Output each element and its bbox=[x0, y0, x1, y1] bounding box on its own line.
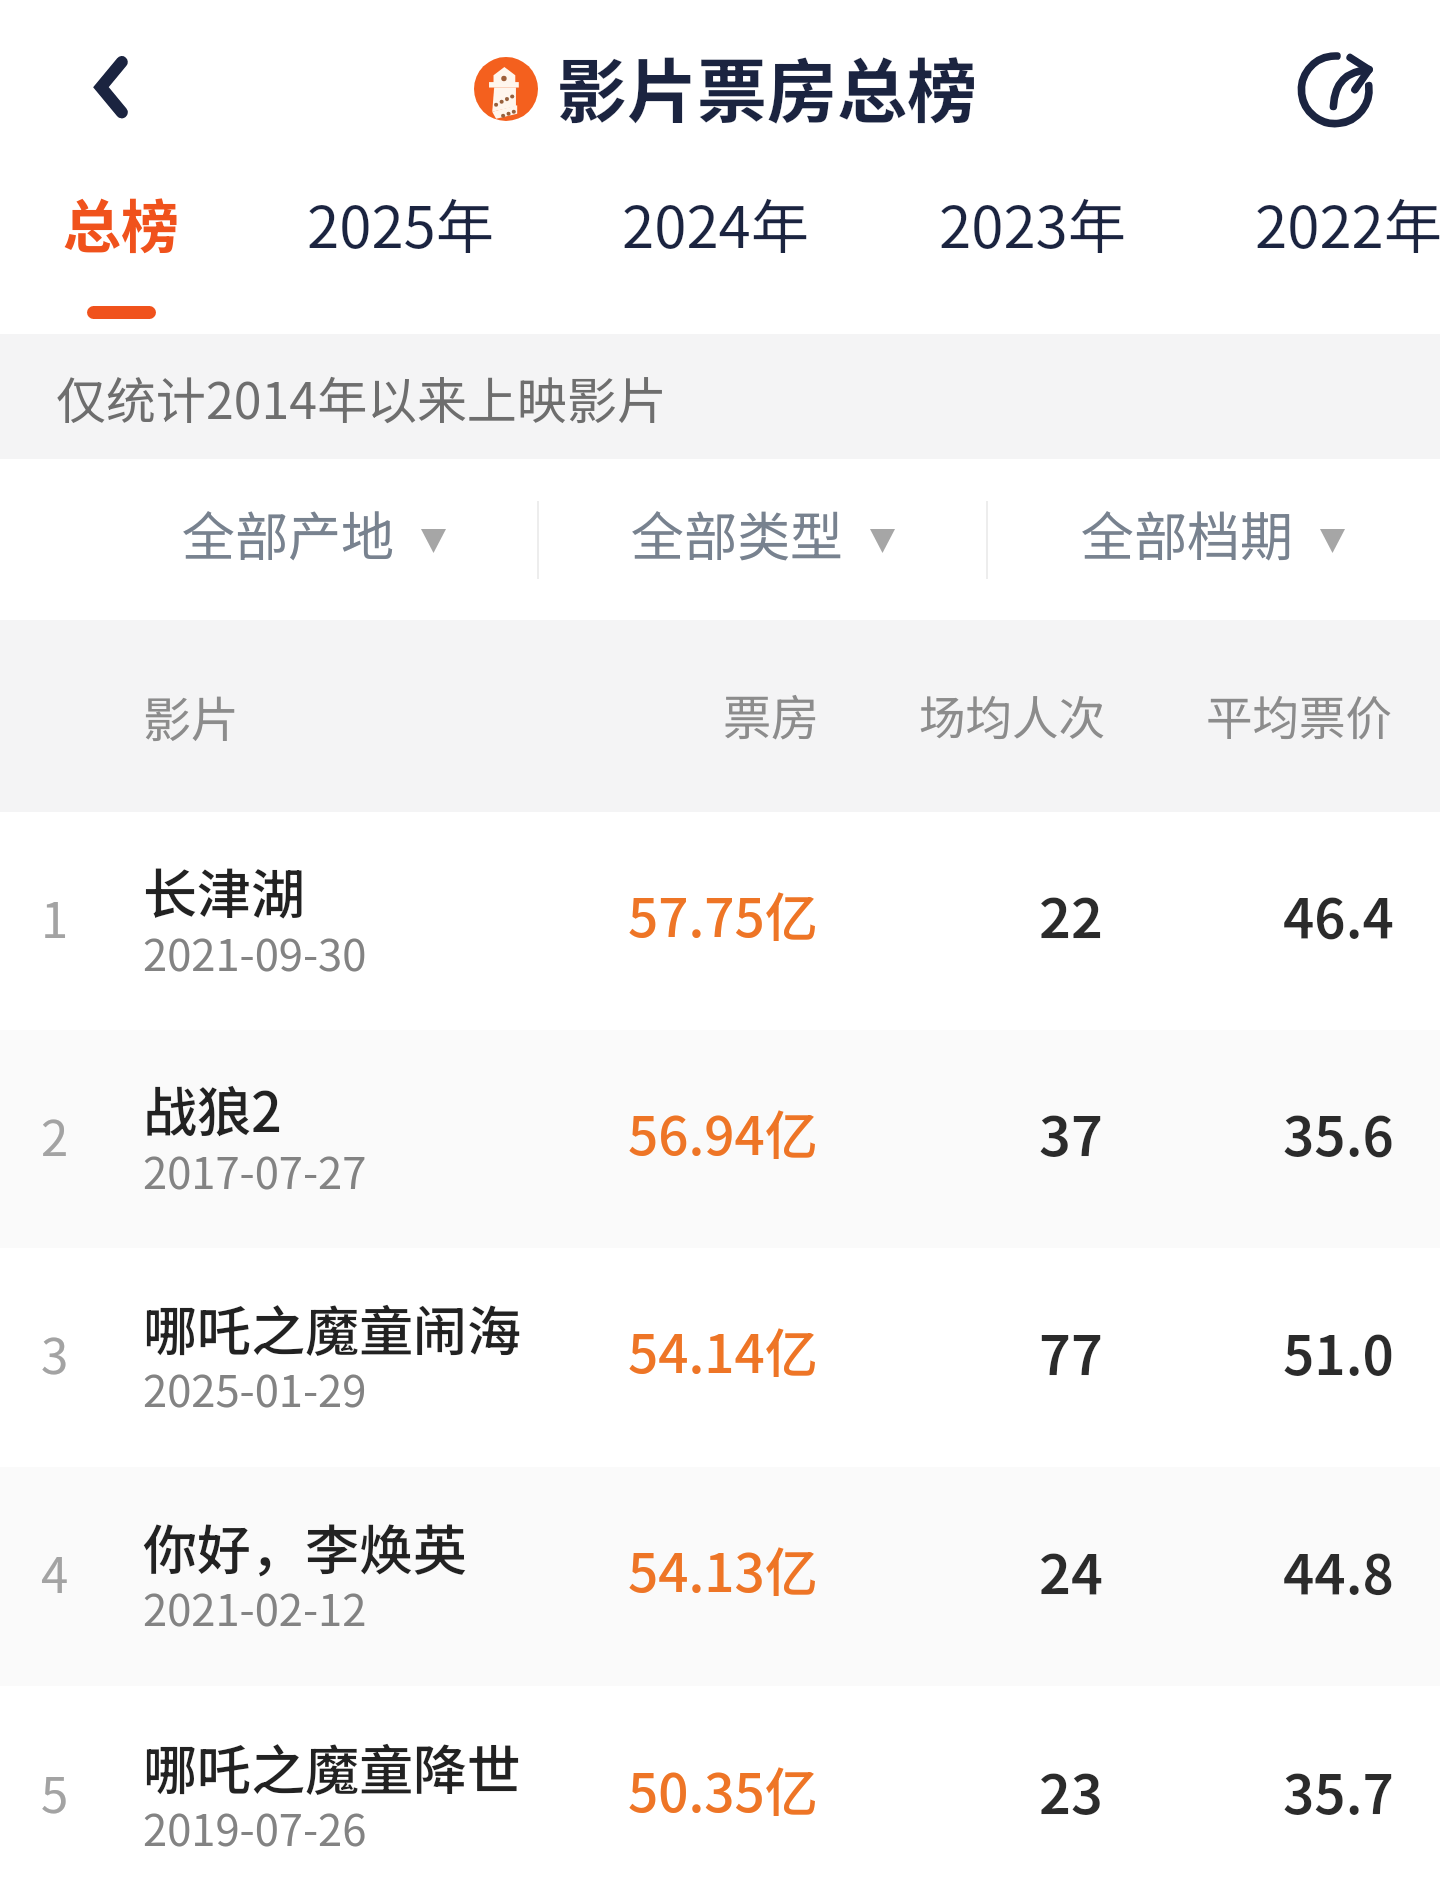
staticText: 23 bbox=[1039, 1750, 1103, 1830]
staticText: 50.35亿 bbox=[628, 1751, 818, 1828]
button[interactable]: 总榜 bbox=[0, 172, 246, 334]
staticText: 2023年 bbox=[939, 181, 1126, 265]
button[interactable]: 2025年 bbox=[275, 172, 525, 334]
staticText: 22 bbox=[1039, 874, 1103, 954]
staticText: 战狼2 bbox=[143, 1069, 282, 1147]
staticText: 2024年 bbox=[622, 181, 809, 265]
staticText: 长津湖 bbox=[143, 851, 305, 929]
staticText: 影片 bbox=[143, 681, 240, 751]
staticText: 44.8 bbox=[1283, 1531, 1394, 1609]
staticText: 2022年 bbox=[1255, 181, 1440, 265]
staticText: 平均票价 bbox=[1206, 681, 1392, 748]
button[interactable]: 5 bbox=[0, 1686, 1440, 1881]
staticText: 全部类型 bbox=[631, 495, 843, 572]
staticText: 2021-09-30 bbox=[143, 921, 367, 984]
button[interactable]: 全部档期 bbox=[1053, 478, 1373, 588]
staticText: 3 bbox=[41, 1317, 69, 1388]
button[interactable]: 4 bbox=[0, 1467, 1440, 1686]
staticText: 37 bbox=[1039, 1092, 1103, 1172]
staticText: 2025年 bbox=[307, 181, 494, 265]
staticText: 2 bbox=[41, 1099, 69, 1170]
staticText: 35.6 bbox=[1283, 1093, 1394, 1171]
button[interactable]: 2024年 bbox=[590, 172, 840, 334]
staticText: 2017-07-27 bbox=[143, 1139, 367, 1202]
staticText: 54.14亿 bbox=[628, 1312, 818, 1389]
staticText: 77 bbox=[1039, 1311, 1103, 1391]
button[interactable]: 1 bbox=[0, 812, 1440, 1030]
button[interactable]: 2 bbox=[0, 1030, 1440, 1248]
button[interactable]: 全部类型 bbox=[603, 478, 923, 588]
staticText: 46.4 bbox=[1283, 875, 1394, 953]
staticText: 影片票房总榜 bbox=[557, 36, 977, 137]
button[interactable]: 全部产地 bbox=[154, 478, 474, 588]
staticText: 24 bbox=[1039, 1530, 1103, 1610]
staticText: 哪吒之魔童闹海 bbox=[143, 1288, 521, 1366]
button[interactable]: Share bbox=[1282, 35, 1392, 145]
staticText: 4 bbox=[41, 1536, 69, 1607]
staticText: 你好，李焕英 bbox=[143, 1507, 467, 1585]
staticText: 57.75亿 bbox=[628, 876, 818, 953]
staticText: 仅统计2014年以来上映影片 bbox=[56, 361, 667, 433]
staticText: 哪吒之魔童降世 bbox=[143, 1727, 521, 1805]
staticText: 场均人次 bbox=[919, 681, 1105, 748]
staticText: 35.7 bbox=[1283, 1751, 1394, 1829]
staticText: 51.0 bbox=[1283, 1312, 1394, 1390]
staticText: 5 bbox=[41, 1756, 69, 1827]
staticText: 56.94亿 bbox=[628, 1094, 818, 1171]
button[interactable]: 2022年 bbox=[1223, 172, 1440, 334]
staticText: 2025-01-29 bbox=[143, 1357, 367, 1420]
button[interactable]: Back bbox=[56, 31, 166, 141]
staticText: 54.13亿 bbox=[628, 1531, 818, 1608]
staticText: 2021-02-12 bbox=[143, 1576, 367, 1639]
staticText: 2019-07-26 bbox=[143, 1796, 367, 1859]
staticText: 全部档期 bbox=[1081, 495, 1293, 572]
button[interactable]: 3 bbox=[0, 1248, 1440, 1467]
button[interactable]: 2023年 bbox=[907, 172, 1157, 334]
staticText: 1 bbox=[41, 881, 69, 952]
staticText: 票房 bbox=[723, 679, 820, 749]
staticText: 全部产地 bbox=[182, 495, 394, 572]
staticText: 总榜 bbox=[63, 181, 180, 265]
